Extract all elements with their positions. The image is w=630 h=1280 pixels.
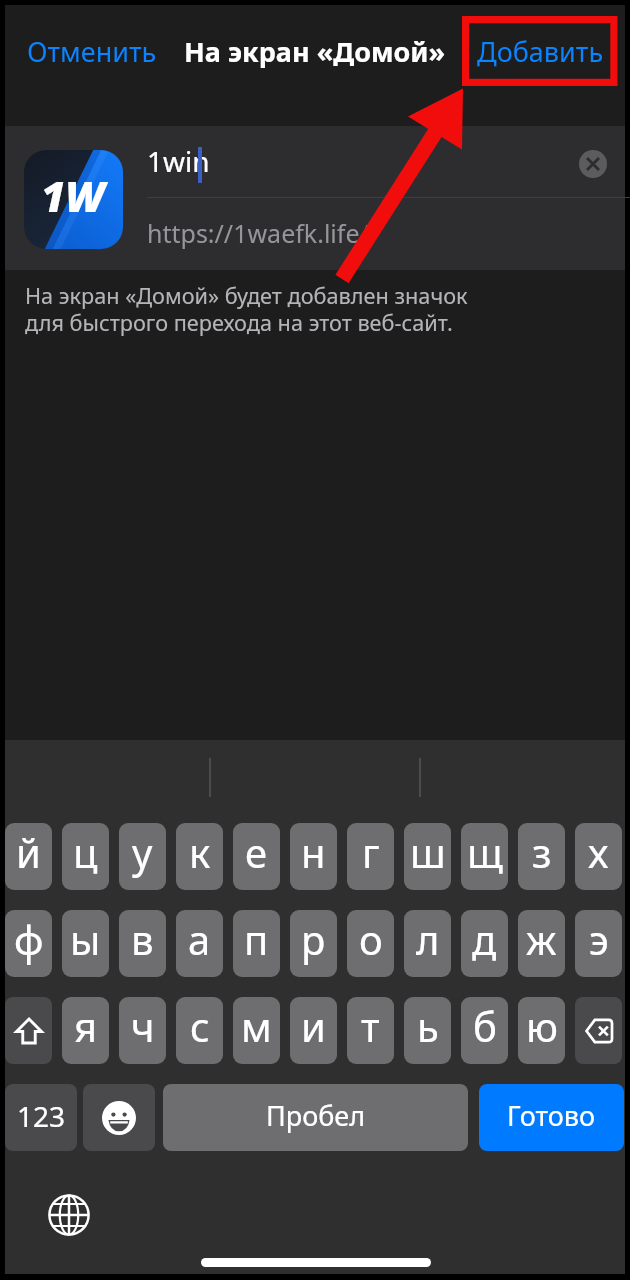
button[interactable]: х (575, 823, 622, 890)
staticText: с (190, 999, 210, 1053)
button[interactable]: в (119, 910, 166, 977)
staticText: ж (526, 912, 557, 966)
staticText: На экран «Домой» будет добавлен значок д… (25, 281, 468, 338)
staticText: 123 (17, 1097, 66, 1135)
button[interactable]: е (233, 823, 280, 890)
button[interactable]: у (119, 823, 166, 890)
button[interactable]: п (233, 910, 280, 977)
staticText: а (188, 912, 211, 966)
button[interactable]: щ (461, 823, 508, 890)
staticText: н (301, 825, 326, 879)
staticText: ш (410, 825, 446, 879)
staticText: у (132, 825, 153, 879)
button[interactable]: з (518, 823, 565, 890)
staticText: щ (467, 825, 503, 879)
staticText: Пробел (266, 1097, 366, 1134)
staticText: я (74, 999, 98, 1053)
staticText: й (16, 825, 41, 879)
staticText: Отменить (27, 33, 157, 70)
button[interactable]: Готово (479, 1084, 624, 1151)
staticText: ф (14, 912, 44, 966)
staticText: к (189, 825, 211, 879)
staticText: м (241, 999, 272, 1053)
staticText: в (131, 912, 154, 966)
staticText: п (244, 912, 269, 966)
button[interactable]: ю (518, 997, 565, 1064)
button[interactable]: р (290, 910, 337, 977)
staticText: т (361, 999, 380, 1053)
staticText: г (362, 825, 380, 879)
staticText: р (301, 912, 326, 966)
button[interactable]: я (62, 997, 109, 1064)
button[interactable]: с (176, 997, 223, 1064)
staticText: д (472, 912, 497, 966)
staticText: л (416, 912, 440, 966)
button[interactable]: а (176, 910, 223, 977)
staticText: ц (73, 825, 98, 879)
button[interactable]: ы (62, 910, 109, 977)
staticText: https://1waefk.life/ (147, 216, 369, 250)
staticText: ы (70, 912, 101, 966)
button[interactable]: Очистить (579, 150, 607, 178)
staticText: Добавить (477, 33, 604, 70)
button[interactable]: Добавить (472, 27, 609, 76)
button[interactable]: Пробел (163, 1084, 468, 1151)
staticText: х (588, 825, 609, 879)
button[interactable]: г (347, 823, 394, 890)
button[interactable]: м (233, 997, 280, 1064)
staticText: ч (131, 999, 155, 1053)
button[interactable]: ь (404, 997, 451, 1064)
staticText: ю (526, 999, 558, 1053)
staticText: е (245, 825, 268, 879)
staticText: о (359, 912, 383, 966)
staticText: На экран «Домой» (184, 33, 446, 70)
staticText: з (532, 825, 552, 879)
button[interactable]: ч (119, 997, 166, 1064)
button[interactable]: 123 (5, 1084, 77, 1151)
button[interactable]: ш (404, 823, 451, 890)
staticText: и (301, 999, 326, 1053)
button[interactable]: Emoji (83, 1084, 155, 1151)
button[interactable]: о (347, 910, 394, 977)
button[interactable]: э (575, 910, 622, 977)
button[interactable]: д (461, 910, 508, 977)
staticText: э (589, 912, 609, 966)
button[interactable]: Backspace (575, 997, 622, 1064)
button[interactable]: й (5, 823, 52, 890)
button[interactable]: Switch language (44, 1190, 94, 1240)
button[interactable]: и (290, 997, 337, 1064)
button[interactable]: ж (518, 910, 565, 977)
staticText: 1W (41, 167, 105, 224)
button[interactable]: н (290, 823, 337, 890)
button[interactable]: ф (5, 910, 52, 977)
button[interactable]: ц (62, 823, 109, 890)
button[interactable]: л (404, 910, 451, 977)
staticText: Готово (507, 1097, 596, 1134)
button[interactable]: Shift (5, 997, 52, 1064)
button[interactable]: к (176, 823, 223, 890)
staticText: 1win (147, 142, 210, 180)
button[interactable]: Отменить (22, 27, 162, 76)
staticText: б (473, 999, 497, 1053)
staticText: ь (417, 999, 439, 1053)
button[interactable]: б (461, 997, 508, 1064)
button[interactable]: т (347, 997, 394, 1064)
